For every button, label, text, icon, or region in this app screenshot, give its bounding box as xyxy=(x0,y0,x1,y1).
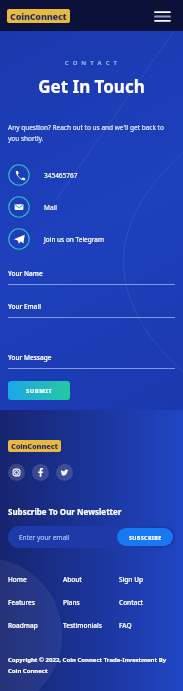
staticText: SUBSCRIBE xyxy=(129,534,162,541)
staticText: C O N T A C T xyxy=(8,59,175,67)
staticText: Home xyxy=(8,575,27,584)
staticText: Any question? Reach out to us and we'll … xyxy=(8,123,175,143)
staticText: Your Email xyxy=(8,302,41,311)
button[interactable]: Contact xyxy=(119,598,144,607)
staticText: Sign Up xyxy=(119,575,143,584)
button[interactable]: CoinConnect logo xyxy=(7,9,70,23)
button[interactable]: FAQ xyxy=(119,621,132,630)
staticText: About xyxy=(63,575,82,584)
button[interactable]: Twitter xyxy=(56,464,73,481)
button[interactable]: Open navigation menu xyxy=(150,4,174,28)
staticText: Join us on Telegram xyxy=(44,235,104,244)
button[interactable]: Send us an email xyxy=(8,193,175,221)
staticText: CoinConnect xyxy=(11,441,58,451)
staticText: Your Name xyxy=(8,269,43,278)
staticText: Testimonials xyxy=(63,621,102,630)
button[interactable]: Sign Up xyxy=(119,575,143,584)
button[interactable]: Features xyxy=(8,598,35,607)
button[interactable]: Facebook xyxy=(32,464,49,481)
staticText: Copyright © 2022, Coin Connect Trade-Inv… xyxy=(8,656,175,675)
button[interactable]: SUBMIT xyxy=(8,381,70,400)
button[interactable]: Testimonials xyxy=(63,621,102,630)
button[interactable]: Your Name xyxy=(8,269,175,285)
button[interactable]: Your Message xyxy=(8,353,175,369)
staticText: FAQ xyxy=(119,621,132,630)
button[interactable]: Call us xyxy=(8,161,175,189)
button[interactable]: Roadmap xyxy=(8,621,38,630)
button[interactable]: Your Email xyxy=(8,302,175,318)
staticText: Subscribe To Our Newsletter xyxy=(8,506,122,517)
staticText: Get In Touch xyxy=(8,75,175,98)
staticText: Your Message xyxy=(8,353,52,362)
staticText: Roadmap xyxy=(8,621,38,630)
button[interactable]: About xyxy=(63,575,82,584)
button[interactable]: SUBSCRIBE xyxy=(117,528,173,546)
staticText: 345465767 xyxy=(44,171,78,180)
staticText: Mail xyxy=(44,203,57,212)
staticText: Contact xyxy=(119,598,144,607)
staticText: Features xyxy=(8,598,35,607)
other: Call us xyxy=(8,164,30,186)
staticText: Plans xyxy=(63,598,80,607)
staticText: CoinConnect xyxy=(10,10,67,22)
staticText: SUBMIT xyxy=(26,387,53,395)
button[interactable]: CoinConnect logo xyxy=(8,440,61,452)
other: Send us an email xyxy=(8,196,30,218)
button[interactable]: Join Telegram xyxy=(8,225,175,253)
other: Join Telegram xyxy=(8,228,30,250)
button[interactable]: Home xyxy=(8,575,27,584)
button[interactable]: Instagram xyxy=(8,464,25,481)
button[interactable]: Plans xyxy=(63,598,80,607)
staticText: Enter your email xyxy=(19,533,70,542)
